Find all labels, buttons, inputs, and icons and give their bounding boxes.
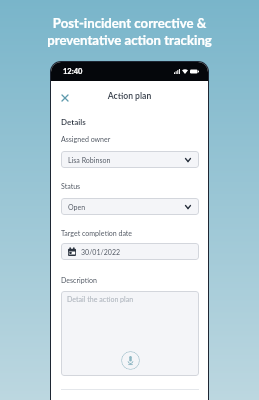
button[interactable]: Open [61,198,199,215]
staticText: Assigned owner [61,135,111,143]
staticText: Detail the action plan [67,295,134,303]
staticText: Action plan [51,91,208,101]
staticText: Lisa Robinson [68,156,111,164]
staticText: Post-incident corrective & [0,15,259,31]
button[interactable]: 30/01/2022 [61,243,199,260]
button[interactable]: Voice input [121,351,140,370]
staticText: Description [61,276,97,284]
button[interactable]: Close [57,90,73,106]
staticText: Details [61,117,86,127]
button[interactable]: Detail the action plan [61,291,199,376]
staticText: Status [61,182,81,190]
staticText: Target completion date [61,229,133,237]
staticText: preventative action tracking [0,32,259,48]
staticText: 30/01/2022 [81,248,121,256]
staticText: Open [68,203,86,211]
button[interactable]: Lisa Robinson [61,151,199,168]
staticText: 12:40 [63,67,83,76]
